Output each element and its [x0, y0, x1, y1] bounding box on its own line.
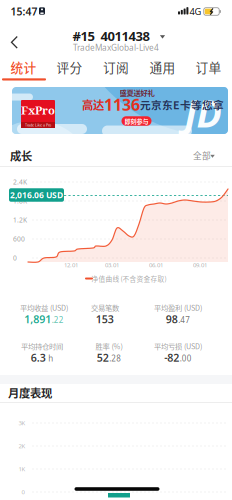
- staticText: 成长: [10, 147, 32, 164]
- staticText: 即刻参与: [124, 117, 148, 125]
- staticText: 平均亏损 (USD): [154, 341, 202, 351]
- staticText: 2,016.06 USD: [10, 189, 63, 201]
- staticText: 2.4K: [13, 177, 27, 187]
- staticText: 0: [21, 488, 24, 496]
- staticText: -82: [164, 350, 179, 365]
- staticText: 03.01: [105, 261, 119, 269]
- staticText: 6.3: [31, 350, 46, 365]
- staticText: 1.8K: [13, 196, 27, 206]
- staticText: 2K: [18, 442, 25, 450]
- staticText: #15 4011438: [72, 27, 149, 45]
- staticText: JD: [184, 88, 221, 138]
- staticText: 净值曲线 (不含资金存取): [91, 274, 166, 283]
- staticText: 98: [166, 312, 178, 326]
- staticText: 52: [97, 350, 109, 365]
- staticText: 高达: [82, 96, 104, 113]
- staticText: 胜率 (%): [95, 341, 122, 351]
- staticText: 通用: [149, 58, 175, 76]
- staticText: 12.01: [64, 261, 78, 269]
- staticText: 153: [96, 312, 114, 326]
- staticText: .00: [180, 353, 192, 364]
- staticText: 06.01: [149, 261, 163, 269]
- staticText: 交易笔数: [91, 302, 119, 313]
- staticText: 1136: [104, 94, 140, 115]
- staticText: 15:47: [10, 4, 37, 19]
- staticText: 平均盈利 (USD): [154, 302, 202, 313]
- staticText: 元京东E卡等您拿: [140, 97, 224, 112]
- staticText: 0: [13, 253, 17, 263]
- staticText: 盛夏送好礼: [119, 87, 154, 98]
- staticText: 3K: [18, 419, 25, 427]
- staticText: .28: [109, 353, 121, 364]
- staticText: 全部: [193, 149, 211, 162]
- staticText: 订单: [195, 58, 221, 76]
- staticText: 09.01: [193, 261, 207, 269]
- staticText: 评分: [56, 58, 82, 76]
- staticText: .22: [52, 315, 64, 325]
- staticText: 统计: [10, 58, 36, 76]
- staticText: FxPro: [21, 102, 55, 118]
- staticText: h: [46, 353, 53, 364]
- staticText: 订阅: [103, 58, 129, 76]
- staticText: 1K: [18, 465, 25, 473]
- staticText: 1,891: [24, 312, 51, 326]
- staticText: 平均持仓时间: [21, 341, 63, 351]
- staticText: 1.2K: [13, 215, 27, 225]
- staticText: Trade Like a Pro: [25, 122, 51, 128]
- staticText: 4G: [189, 5, 201, 18]
- staticText: 600: [13, 234, 25, 244]
- staticText: .47: [178, 315, 190, 325]
- staticText: 平均收益 (USD): [20, 302, 68, 313]
- staticText: 月度表现: [8, 384, 52, 401]
- staticText: TradeMaxGlobal-Live4: [73, 42, 159, 53]
